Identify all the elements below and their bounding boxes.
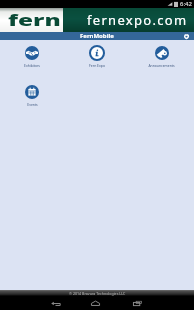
button[interactable]: Events <box>0 85 64 107</box>
button[interactable]: Refresh <box>181 32 192 40</box>
button[interactable]: Announcements <box>129 46 194 68</box>
button[interactable]: Exhibitors <box>0 46 64 68</box>
staticText: Announcements <box>148 63 175 68</box>
staticText: Fern Expo <box>89 63 105 68</box>
button[interactable]: Recents <box>123 296 151 310</box>
button[interactable]: Back <box>41 296 70 310</box>
staticText: fernexpo.com <box>87 11 188 29</box>
staticText: fern <box>8 10 61 30</box>
button[interactable]: Home <box>81 296 109 310</box>
staticText: FernMobile <box>80 32 114 40</box>
staticText: Events <box>27 102 38 107</box>
staticText: 6:42 <box>180 0 192 8</box>
button[interactable]: Fern Expo <box>64 46 129 68</box>
staticText: Exhibitors <box>24 63 40 68</box>
staticText: © 2014 Bravura Technologies LLC <box>69 291 126 296</box>
